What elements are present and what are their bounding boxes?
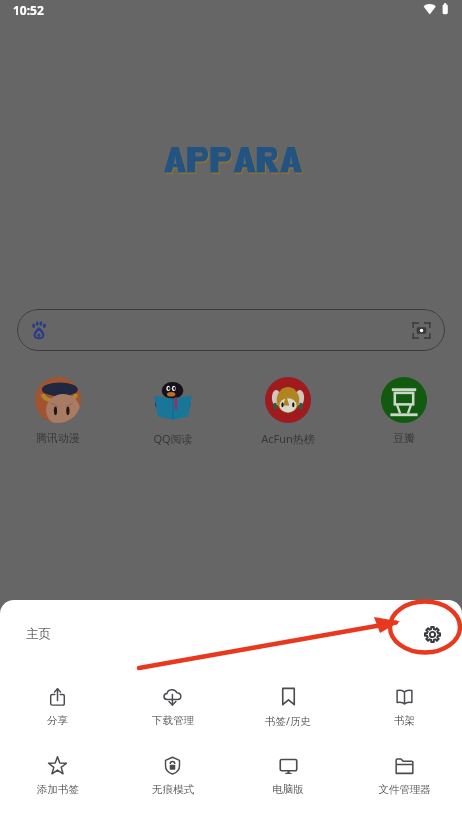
staticText: 电脑版 — [272, 783, 304, 796]
other: Scan — [412, 321, 431, 340]
staticText: 书架 — [394, 714, 415, 727]
button[interactable]: 下载管理 — [115, 683, 230, 729]
button[interactable]: 书架 — [346, 683, 462, 729]
staticText: 文件管理器 — [378, 783, 431, 796]
button[interactable]: Settings — [416, 618, 449, 651]
button[interactable]: 电脑版 — [230, 752, 346, 798]
button[interactable]: AcFun热榜 — [230, 377, 346, 446]
button[interactable]: 书签/历史 — [230, 683, 346, 730]
button[interactable]: 豆瓣 — [346, 377, 462, 445]
button[interactable]: 腾讯动漫 — [0, 377, 115, 445]
staticText: AcFun热榜 — [261, 431, 315, 446]
staticText: 豆瓣 — [393, 431, 415, 445]
button[interactable]: 添加书签 — [0, 752, 115, 798]
staticText: 腾讯动漫 — [36, 431, 80, 445]
button[interactable]: Scan — [17, 309, 445, 351]
staticText: 10:52 — [13, 2, 44, 18]
staticText: QQ阅读 — [153, 431, 193, 446]
button[interactable]: 分享 — [0, 683, 115, 729]
staticText: 分享 — [47, 714, 68, 727]
staticText: 无痕模式 — [152, 783, 194, 796]
staticText: 书签/历史 — [265, 714, 311, 728]
staticText: 添加书签 — [37, 783, 79, 796]
button[interactable]: 无痕模式 — [115, 752, 230, 798]
button[interactable]: 文件管理器 — [346, 752, 462, 798]
button[interactable]: QQ阅读 — [115, 377, 230, 446]
staticText: 下载管理 — [152, 714, 194, 727]
staticText: 主页 — [26, 626, 51, 642]
